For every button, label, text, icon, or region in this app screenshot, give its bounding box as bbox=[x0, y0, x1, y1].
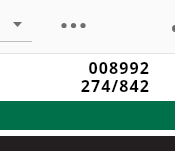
button[interactable]: More options bbox=[58, 15, 90, 36]
staticText: 008992 bbox=[88, 57, 150, 79]
button[interactable]: Open dropdown bbox=[9, 16, 25, 32]
staticText: 274/842 bbox=[80, 75, 150, 97]
button[interactable]: Account bbox=[172, 25, 175, 32]
